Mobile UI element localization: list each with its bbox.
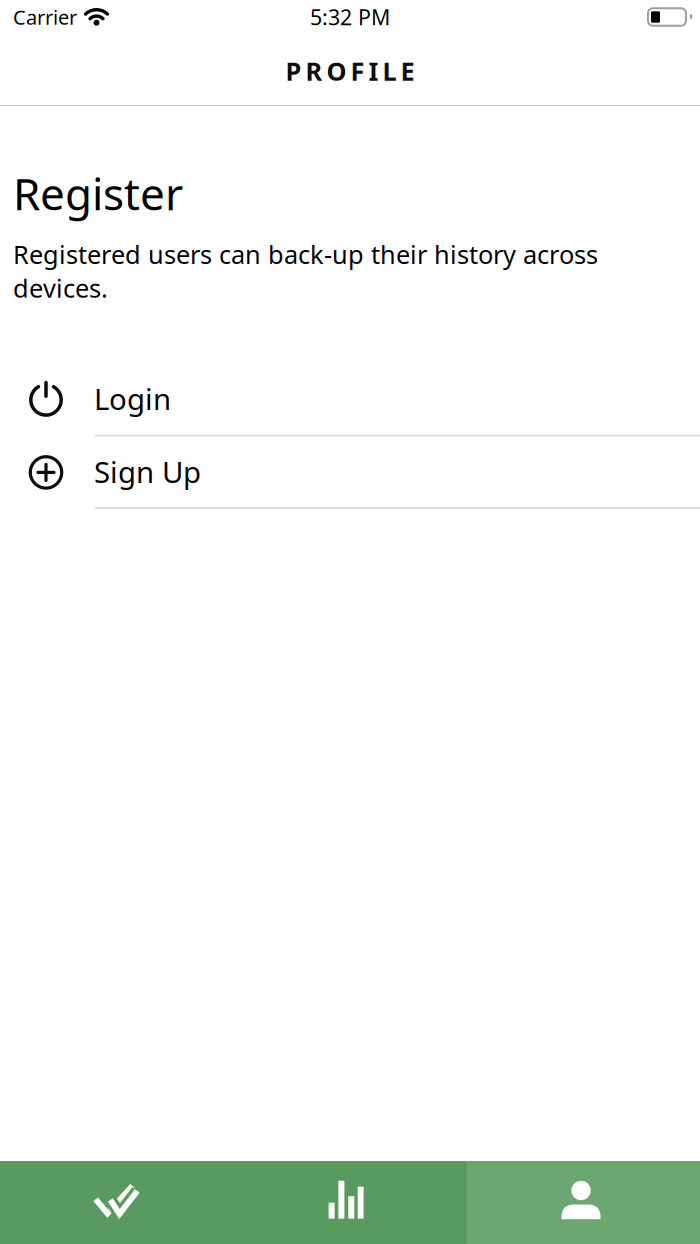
staticText: 5:32 PM (310, 3, 390, 31)
staticText: PROFILE (285, 54, 414, 88)
button[interactable]: Statistics (233, 1161, 467, 1244)
button[interactable]: Habits (0, 1161, 233, 1244)
button[interactable]: Sign Up (0, 436, 700, 507)
staticText: Registered users can back-up their histo… (13, 237, 598, 305)
staticText: Carrier (13, 4, 77, 30)
staticText: Login (94, 379, 171, 418)
staticText: Sign Up (94, 452, 201, 491)
button[interactable]: Profile (467, 1161, 700, 1244)
button[interactable]: Login (0, 363, 700, 435)
staticText: Register (13, 164, 183, 222)
